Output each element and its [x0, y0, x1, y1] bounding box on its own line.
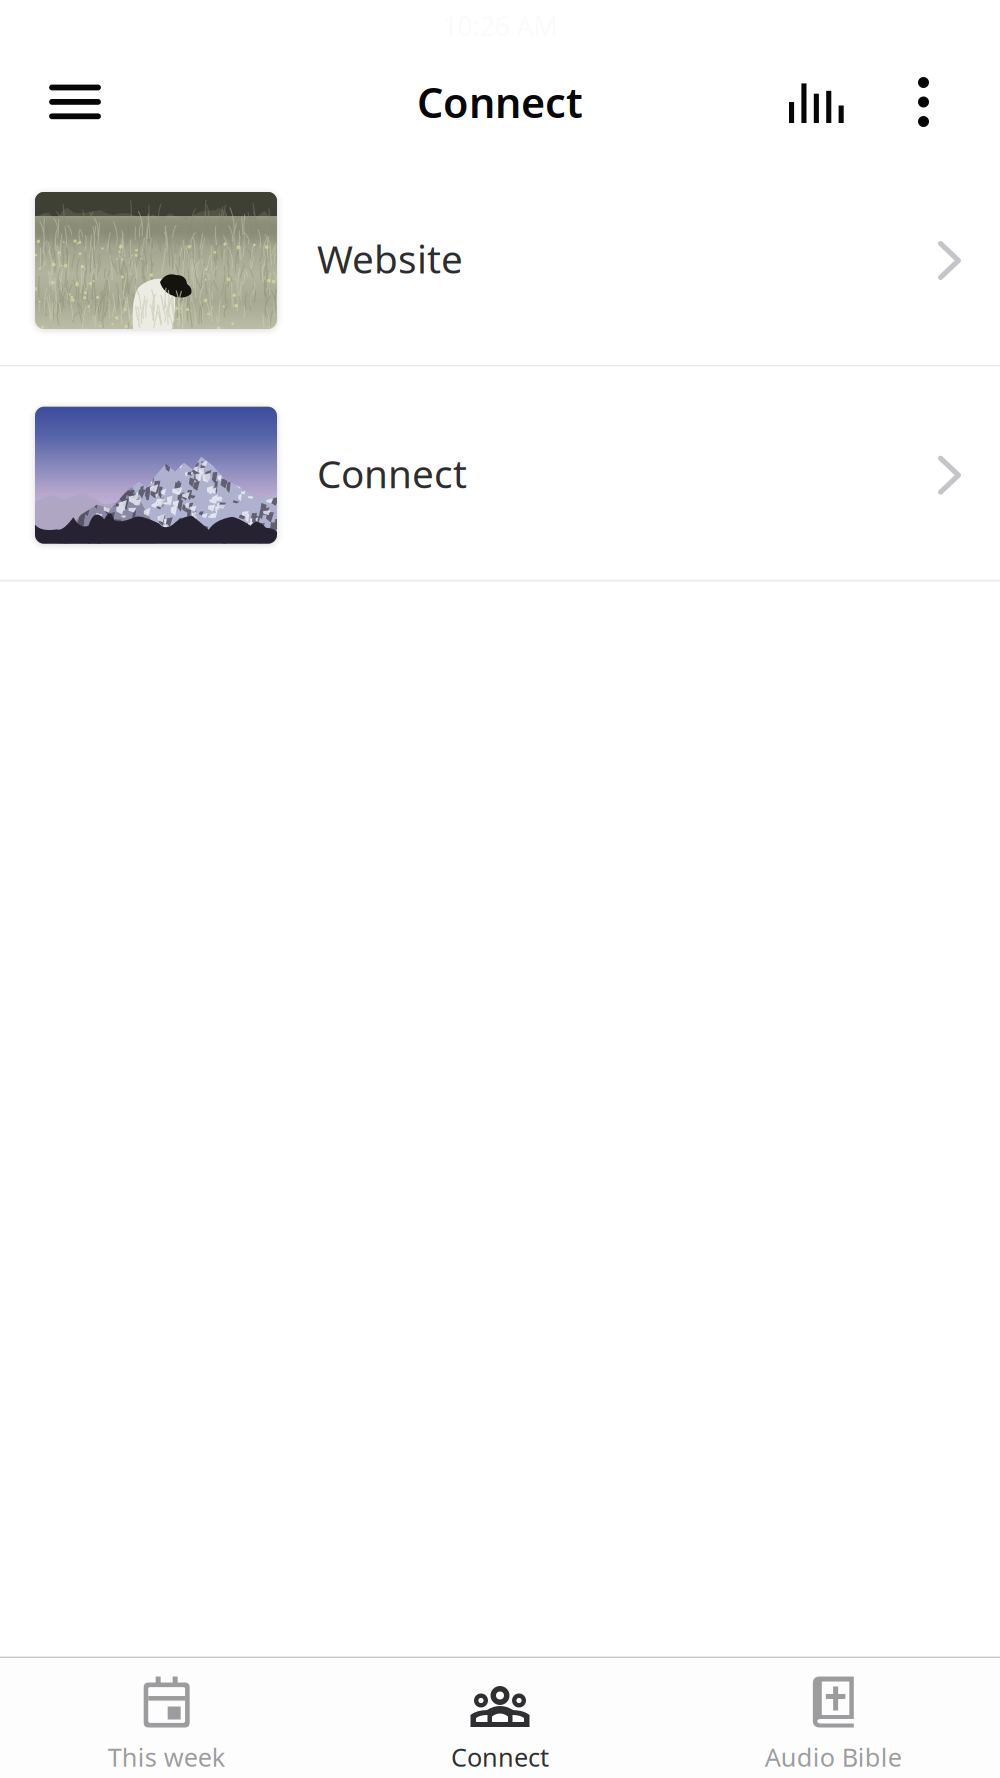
button[interactable]: Connect: [333, 1658, 667, 1778]
staticText: Website: [317, 233, 463, 284]
staticText: Connect: [417, 75, 583, 129]
button[interactable]: Menu: [0, 52, 125, 152]
button[interactable]: Audio Bible: [667, 1658, 1000, 1778]
button[interactable]: Website: [0, 152, 1000, 365]
button[interactable]: Connect: [0, 367, 1000, 580]
button[interactable]: Now playing: [768, 52, 880, 152]
staticText: This week: [108, 1740, 226, 1774]
button[interactable]: This week: [0, 1658, 333, 1778]
staticText: Audio Bible: [765, 1740, 902, 1774]
button[interactable]: More options: [880, 52, 1000, 152]
staticText: Connect: [317, 447, 467, 499]
staticText: Connect: [451, 1740, 549, 1774]
